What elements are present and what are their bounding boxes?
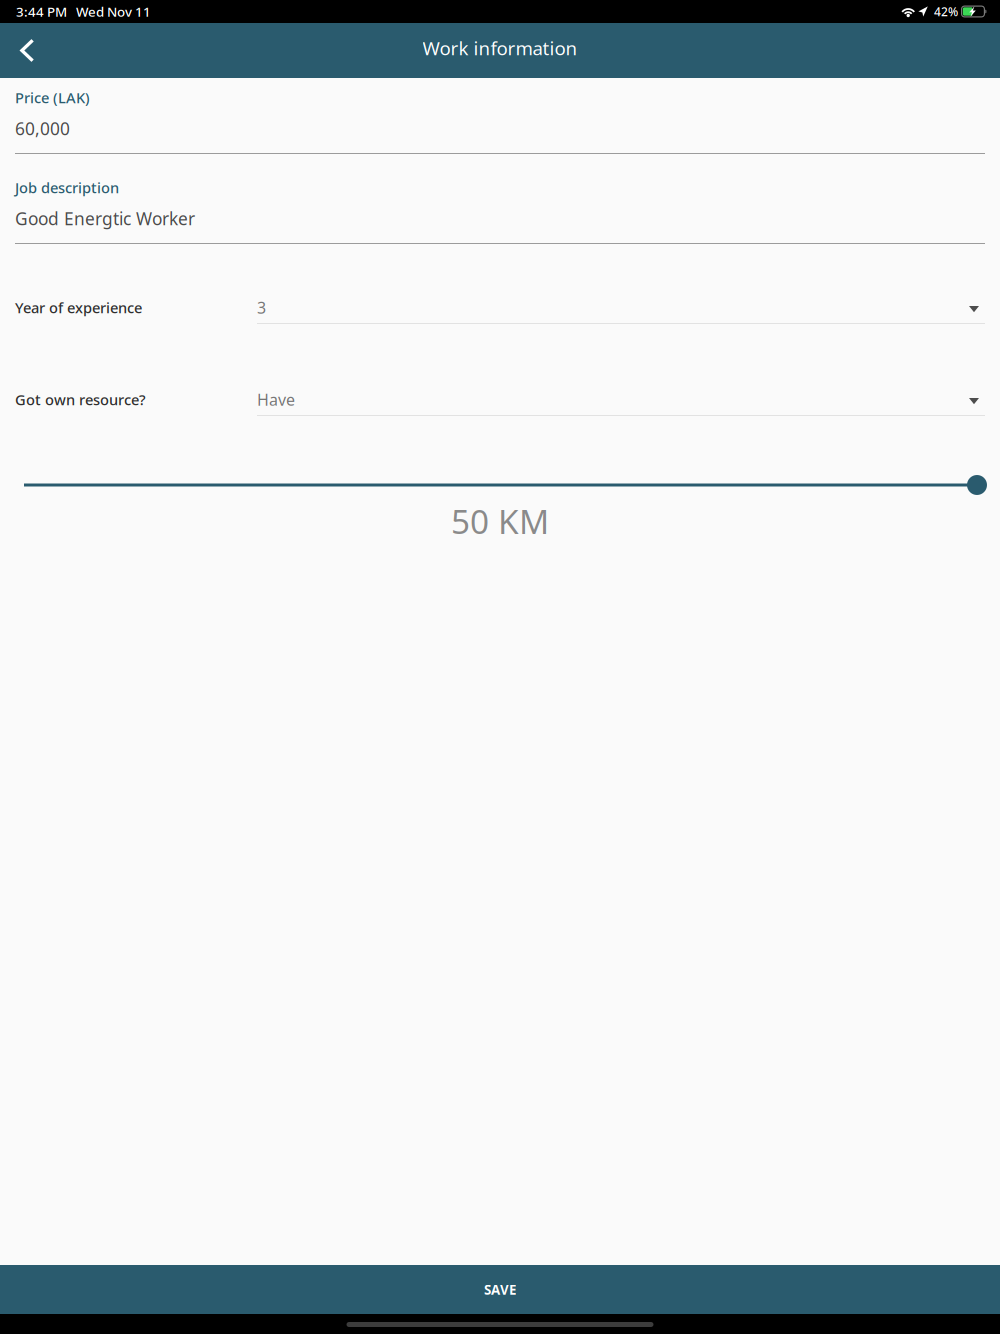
staticText: 3 [257, 297, 266, 318]
staticText: Wed Nov 11 [76, 3, 151, 20]
staticText: Work information [422, 36, 577, 60]
staticText: 42% [934, 3, 958, 19]
staticText: Got own resource? [15, 390, 146, 409]
staticText: 60,000 [15, 117, 70, 140]
button[interactable]: Job description [0, 175, 1000, 244]
button[interactable]: SAVE [0, 1265, 1000, 1314]
staticText: Good Energtic Worker [15, 207, 195, 230]
staticText: 3:44 PM [16, 3, 67, 20]
button[interactable]: Back [0, 23, 51, 78]
staticText: SAVE [484, 1281, 516, 1298]
button[interactable]: Price (LAK) [0, 85, 1000, 154]
staticText: Year of experience [15, 298, 142, 317]
staticText: 50 KM [451, 499, 549, 543]
staticText: Have [257, 389, 295, 410]
staticText: Price (LAK) [15, 88, 90, 107]
staticText: Job description [15, 178, 119, 197]
button[interactable]: Got own resource? [0, 383, 1000, 416]
button[interactable]: Distance, 50 KM [0, 475, 1000, 495]
button[interactable]: Year of experience [0, 291, 1000, 324]
